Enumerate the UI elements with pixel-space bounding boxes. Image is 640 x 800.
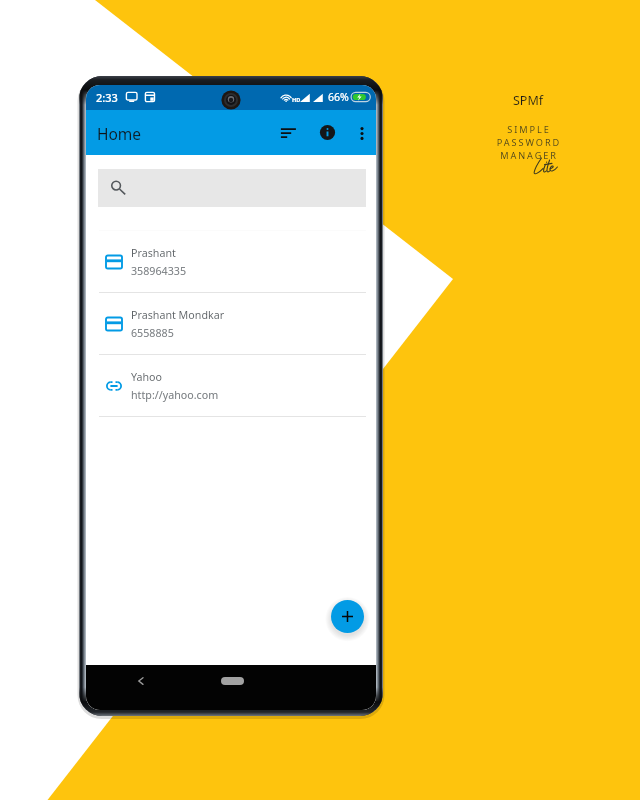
button[interactable]: Add bbox=[331, 600, 364, 633]
button[interactable]: Back bbox=[128, 665, 153, 690]
staticText: Yahoo bbox=[131, 370, 163, 385]
staticText: 66% bbox=[328, 90, 349, 104]
button[interactable]: Sort bbox=[272, 117, 304, 149]
button[interactable]: Prashant Mondkar bbox=[86, 292, 376, 354]
button[interactable]: Info bbox=[312, 117, 343, 148]
button[interactable]: Prashant bbox=[86, 230, 376, 292]
button[interactable]: Home bbox=[221, 677, 244, 685]
button[interactable]: More options bbox=[348, 119, 376, 147]
staticText: SPMf bbox=[440, 92, 616, 109]
staticText: 2:33 bbox=[96, 90, 118, 105]
staticText: 358964335 bbox=[131, 264, 187, 279]
button[interactable]: Yahoo bbox=[86, 354, 376, 416]
staticText: Home bbox=[97, 123, 142, 144]
staticText: HD bbox=[292, 96, 301, 104]
staticText: Prashant Mondkar bbox=[131, 308, 225, 323]
staticText: 6558885 bbox=[131, 326, 174, 341]
button[interactable]: Search bbox=[98, 169, 366, 207]
staticText: Prashant bbox=[131, 246, 176, 261]
staticText: SIMPLE PASSWORD MANAGER bbox=[441, 123, 617, 162]
staticText: http://yahoo.com bbox=[131, 388, 219, 403]
